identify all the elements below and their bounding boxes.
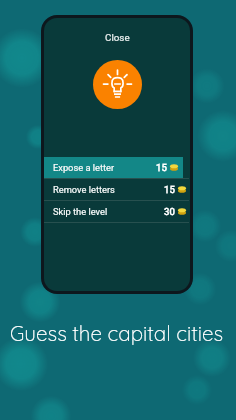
staticText: 30	[164, 206, 175, 217]
staticText: Remove letters	[53, 184, 115, 195]
button[interactable]: Close	[105, 32, 130, 43]
staticText: 15	[156, 162, 167, 173]
button[interactable]: Hint	[93, 60, 142, 109]
staticText: Skip the level	[53, 206, 108, 217]
button[interactable]: Skip the level	[44, 201, 189, 222]
button[interactable]: Expose a letter	[44, 157, 189, 178]
staticText: Expose a letter	[53, 162, 115, 173]
button[interactable]: Remove letters	[44, 179, 189, 200]
staticText: Guess the capital cities	[10, 320, 224, 346]
staticText: 15	[164, 184, 175, 195]
